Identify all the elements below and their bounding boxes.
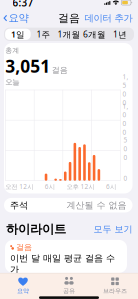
button[interactable]: 브라우즈 — [92, 276, 138, 295]
button[interactable]: 1년 — [107, 29, 133, 40]
staticText: 요약 — [17, 287, 29, 295]
button[interactable]: 1개월 — [56, 29, 82, 40]
staticText: 0 — [123, 174, 127, 183]
staticText: 데이터 추가 — [84, 12, 132, 24]
staticText: 주석 — [10, 199, 28, 211]
staticText: 공유 — [63, 287, 75, 295]
staticText: 계산될 수 없음 — [66, 199, 126, 211]
staticText: 1,500 — [122, 72, 128, 107]
button[interactable]: 1일 — [5, 29, 31, 40]
staticText: 6:37 — [12, 0, 33, 9]
button[interactable]: 데이터 추가 — [80, 11, 138, 26]
button[interactable]: 모두 보기 — [87, 221, 132, 237]
staticText: 모두 보기 — [93, 223, 132, 235]
staticText: 1개월 — [57, 28, 80, 40]
staticText: 3,051 — [5, 54, 50, 78]
button[interactable]: 1주 — [31, 29, 56, 40]
button[interactable]: 공유 — [46, 276, 92, 295]
button[interactable]: 걸음 — [5, 240, 127, 273]
staticText: 1주 — [36, 28, 50, 40]
staticText: 하이라이트 — [6, 221, 66, 237]
staticText: 오후 12시 — [66, 182, 94, 191]
staticText: 총계 — [5, 46, 19, 55]
staticText: 요약 — [8, 11, 28, 25]
staticText: 500 — [123, 136, 127, 162]
staticText: 이번 달 매일 평균 걸음 수가 — [10, 252, 115, 275]
staticText: 걸음 — [16, 242, 32, 252]
staticText: 오늘 — [5, 77, 19, 87]
staticText: 6개월 — [83, 28, 106, 40]
staticText: 1,000 — [122, 102, 128, 137]
staticText: 6시 — [45, 182, 55, 191]
staticText: 걸음 — [58, 11, 80, 25]
staticText: 지난달보다 좋았습니다. — [10, 276, 106, 288]
staticText: 걸음 — [52, 65, 68, 75]
staticText: 6시 — [106, 182, 116, 191]
staticText: 브라우즈 — [103, 287, 127, 295]
button[interactable]: 6개월 — [82, 29, 107, 40]
staticText: 오전 12시 — [5, 182, 33, 191]
staticText: 1일 — [11, 28, 25, 40]
button[interactable]: 요약 — [0, 276, 46, 295]
button[interactable]: 주석 — [0, 193, 138, 212]
staticText: 1년 — [113, 28, 127, 40]
button[interactable]: 요약 — [0, 11, 32, 26]
